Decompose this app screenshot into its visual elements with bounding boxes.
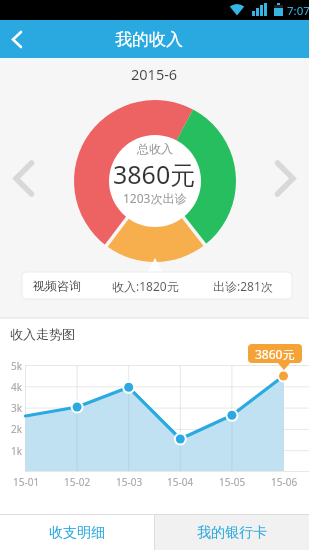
staticText: 15-06 xyxy=(271,475,298,489)
staticText: 7:07 xyxy=(287,3,309,19)
staticText: 15-05 xyxy=(219,475,246,489)
button[interactable]: 我的银行卡 xyxy=(155,515,309,550)
staticText: 我的银行卡 xyxy=(197,524,267,542)
staticText: 视频咨询 xyxy=(33,278,81,293)
staticText: 15-04 xyxy=(167,475,194,489)
staticText: 15-01 xyxy=(13,475,40,489)
button[interactable] xyxy=(265,155,303,203)
button[interactable]: 收支明细 xyxy=(0,515,154,550)
staticText: 3860元 xyxy=(255,346,295,362)
staticText: 出诊:281次 xyxy=(213,278,273,294)
staticText: 4k xyxy=(11,380,23,394)
staticText: 2015-6 xyxy=(131,64,178,84)
button[interactable] xyxy=(0,20,56,58)
staticText: 我的收入 xyxy=(115,29,183,50)
staticText: 收支明细 xyxy=(49,524,105,542)
staticText: 15-03 xyxy=(116,475,143,489)
staticText: 1k xyxy=(11,444,23,458)
staticText: 2k xyxy=(11,422,23,436)
staticText: 总收入 xyxy=(137,141,173,156)
button[interactable] xyxy=(6,155,44,203)
staticText: 15-02 xyxy=(64,475,91,489)
staticText: 1203次出诊 xyxy=(123,190,187,206)
staticText: 3k xyxy=(11,401,23,415)
staticText: 收入:1820元 xyxy=(112,278,179,294)
staticText: 收入走势图 xyxy=(10,326,75,342)
staticText: 3860元 xyxy=(113,157,196,191)
staticText: 5k xyxy=(11,359,23,373)
